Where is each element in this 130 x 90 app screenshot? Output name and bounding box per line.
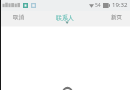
button[interactable]: 新页 <box>103 10 130 25</box>
staticText: 新页 <box>111 14 122 21</box>
staticText: 19:32 <box>112 1 128 9</box>
button[interactable]: 取消 <box>0 10 32 25</box>
staticText: 联系人 <box>56 14 74 22</box>
other: Home <box>0 0 130 90</box>
staticText: 54 <box>95 2 101 9</box>
staticText: 取消 <box>13 14 24 21</box>
